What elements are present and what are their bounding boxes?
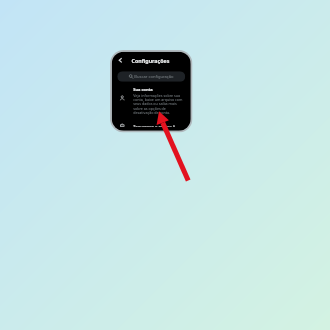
staticText: Sua conta (133, 86, 153, 92)
staticText: Buscar configuração (134, 74, 174, 79)
staticText: Segurança e acesso à conta (133, 123, 185, 127)
button[interactable]: Back (115, 55, 125, 65)
button[interactable]: Buscar configuração (117, 71, 185, 82)
staticText: Configurações (131, 57, 169, 64)
button[interactable]: Sua conta (112, 82, 191, 119)
staticText: Veja informações sobre sua conta, baixe … (133, 93, 185, 115)
button[interactable]: Segurança e acesso à conta (112, 119, 191, 131)
